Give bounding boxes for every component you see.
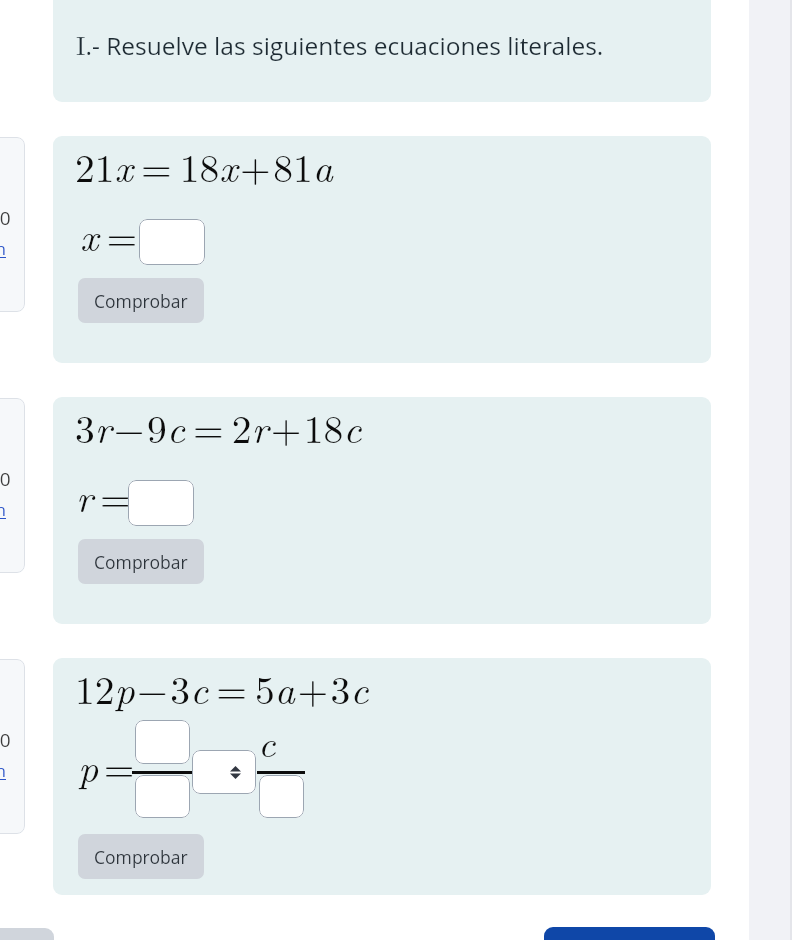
button[interactable]: Actividad siguiente [544,927,715,940]
staticText: c [258,714,276,768]
button[interactable]: Puntuacion de la actividad [0,398,25,573]
staticText: Comprobar [94,845,188,869]
staticText: Ver solución [0,498,6,521]
button[interactable]: Actividad anterior [0,928,54,940]
staticText: Ver solución [0,759,6,782]
staticText: 12p − 3c = 5a + 3c [75,659,369,715]
staticText: Comprobar [94,289,188,313]
staticText: r = [76,467,131,523]
staticText: Puntuación: 0 [0,466,11,492]
staticText: Ver solución [0,237,6,260]
staticText: I.- Resuelve las siguientes ecuaciones l… [76,26,604,63]
button[interactable]: Campo de respuesta [135,720,190,764]
staticText: 3r − 9c = 2r + 18c [75,398,362,454]
button[interactable]: Puntuacion de la actividad [0,137,25,312]
button[interactable]: Puntuacion de la actividad [0,659,25,834]
button[interactable]: Selector de operacion [192,750,256,794]
button[interactable]: Comprobar [78,834,204,879]
staticText: Puntuación: 0 [0,727,11,753]
staticText: 21x = 18x + 81a [75,137,333,193]
button[interactable]: Campo de respuesta [259,775,304,818]
button[interactable]: Comprobar [78,539,204,584]
button[interactable]: Comprobar [78,278,204,323]
staticText: x = [80,206,138,262]
staticText: p = [78,737,135,793]
button[interactable]: Campo de respuesta [139,219,205,265]
button[interactable]: Campo de respuesta [128,480,194,526]
staticText: Comprobar [94,550,188,574]
staticText: Puntuación: 0 [0,205,11,231]
button[interactable]: Campo de respuesta [135,775,190,818]
